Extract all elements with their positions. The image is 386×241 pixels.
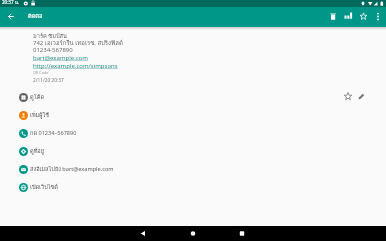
- button[interactable]: ดูโค้ด: [0, 88, 386, 106]
- button[interactable]: [183, 226, 203, 241]
- button[interactable]: เปิดเว็บไซต์: [0, 178, 386, 196]
- staticText: 20:37 น.: [2, 0, 19, 6]
- staticText: QR Code: [33, 70, 49, 75]
- staticText: 2/11/20 20:37: [33, 77, 64, 84]
- button[interactable]: [356, 10, 370, 24]
- staticText: ส่งอีเมลไปยัง bart@example.com: [30, 165, 114, 174]
- button[interactable]: [232, 226, 252, 241]
- button[interactable]: [0, 7, 20, 27]
- staticText: 742 เอเวอร์กรีน เทอเรซ, สปริงฟิลด์: [33, 38, 123, 48]
- button[interactable]: [371, 10, 385, 24]
- button[interactable]: [341, 89, 355, 103]
- button[interactable]: [326, 10, 340, 24]
- button[interactable]: ดูที่อยู่: [0, 142, 386, 160]
- button[interactable]: [133, 226, 153, 241]
- staticText: เปิดเว็บไซต์: [30, 183, 58, 192]
- staticText: 01234-567890: [33, 46, 73, 54]
- button[interactable]: [355, 89, 369, 103]
- button[interactable]: ส่งอีเมลไปยัง bart@example.com: [0, 160, 386, 178]
- staticText: ดูที่อยู่: [30, 147, 44, 156]
- button[interactable]: bart@example.com: [33, 54, 88, 62]
- staticText: กด 01234–567890: [30, 129, 77, 138]
- staticText: เพิ่มผู้ใช้: [30, 111, 50, 120]
- staticText: ดูโค้ด: [30, 93, 45, 102]
- staticText: ติดต่อ: [28, 12, 43, 21]
- button[interactable]: เพิ่มผู้ใช้: [0, 106, 386, 124]
- staticText: มาร์ค ซิมป์สัน: [33, 31, 67, 40]
- button[interactable]: http://example.com/simpsons: [33, 62, 118, 70]
- button[interactable]: กด 01234–567890: [0, 124, 386, 142]
- button[interactable]: [341, 10, 355, 24]
